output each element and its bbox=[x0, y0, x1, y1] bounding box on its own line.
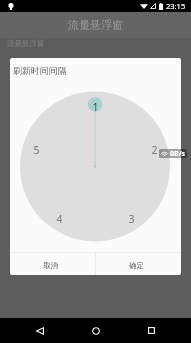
button[interactable]: Home bbox=[80, 318, 112, 343]
staticText: 2 bbox=[151, 143, 158, 157]
staticText: 3 bbox=[128, 212, 135, 226]
button[interactable]: Network speed floating window bbox=[159, 149, 187, 158]
staticText: 流量悬浮窗 bbox=[68, 18, 123, 32]
button[interactable]: Back bbox=[24, 318, 56, 343]
staticText: 4 bbox=[56, 212, 63, 226]
staticText: 0B/s bbox=[170, 149, 186, 158]
staticText: 刷新时间间隔 bbox=[13, 65, 67, 76]
button[interactable]: 确定 bbox=[96, 253, 181, 275]
staticText: 23:15 bbox=[166, 1, 186, 11]
staticText: 确定 bbox=[129, 261, 144, 270]
button[interactable]: 取消 bbox=[10, 253, 95, 275]
staticText: 5 bbox=[33, 143, 40, 157]
button[interactable]: Recent apps bbox=[135, 318, 167, 343]
staticText: 流量悬浮窗 bbox=[7, 39, 45, 48]
staticText: 取消 bbox=[43, 261, 58, 270]
staticText: 1 bbox=[92, 100, 99, 114]
